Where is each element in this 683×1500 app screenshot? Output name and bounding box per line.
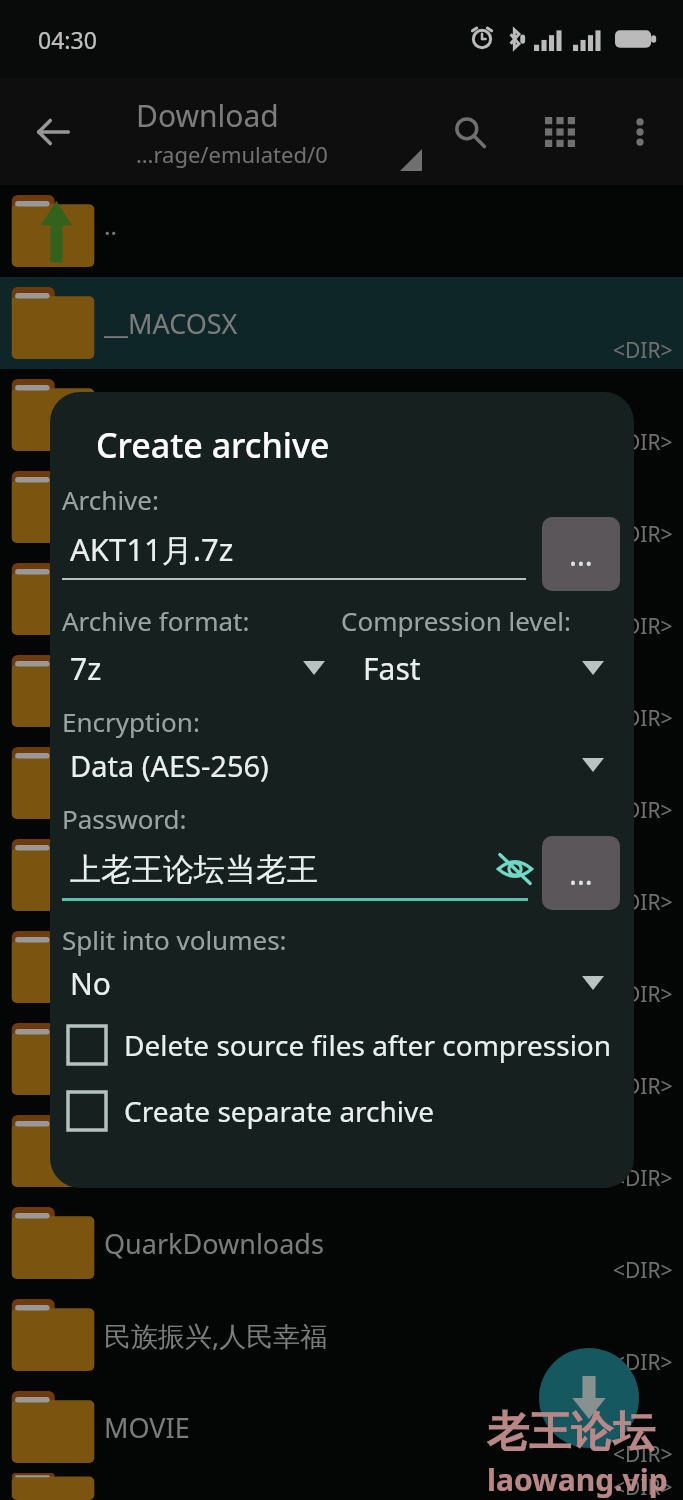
button[interactable]: Back (22, 101, 84, 163)
staticText: <DIR> (613, 612, 673, 641)
staticText: 上老王论坛当老王 (70, 850, 492, 889)
button[interactable]: <DIR> (0, 1013, 683, 1105)
button[interactable]: QuarkDownloads (0, 1197, 683, 1289)
button[interactable]: Show password (492, 846, 538, 892)
button[interactable]: .. (0, 185, 683, 277)
button[interactable]: Delete source files after compression (68, 1019, 620, 1071)
staticText: 老王论坛 (487, 1406, 655, 1459)
staticText: Password: (62, 801, 187, 836)
staticText: 7z (70, 648, 303, 689)
button[interactable]: Password options (542, 836, 620, 910)
staticText: Fast (363, 648, 582, 689)
button[interactable]: AKT11月.7z (62, 528, 538, 580)
staticText: …rage/emulated/0 (136, 139, 328, 169)
staticText: Create separate archive (124, 1092, 435, 1130)
button[interactable]: No (62, 957, 620, 1009)
staticText: AKT11月.7z (70, 528, 234, 570)
staticText: Encryption: (62, 704, 200, 739)
staticText: <DIR> (613, 888, 673, 917)
button[interactable]: <DIR> (0, 461, 683, 553)
staticText: Archive format: (62, 603, 341, 638)
staticText: 04:30 (38, 24, 97, 55)
staticText: Download (136, 95, 279, 136)
staticText: <DIR> (613, 704, 673, 733)
staticText: <DIR> (613, 980, 673, 1009)
button[interactable]: More options (611, 103, 669, 161)
button[interactable]: <DIR> (0, 645, 683, 737)
staticText: Create archive (96, 422, 330, 468)
staticText: <DIR> (613, 1348, 673, 1377)
staticText: <DIR> (613, 1164, 673, 1193)
staticText: Split into volumes: (62, 922, 287, 957)
staticText: 民族振兴,人民幸福 (104, 1317, 328, 1354)
staticText: Data (AES-256) (70, 746, 582, 785)
button[interactable]: <DIR> (0, 737, 683, 829)
staticText: <DIR> (613, 1072, 673, 1101)
staticText: <DIR> (613, 520, 673, 549)
staticText: <DIR> (613, 336, 673, 365)
button[interactable]: Fast (341, 642, 620, 694)
button[interactable]: Data (AES-256) (62, 739, 620, 791)
staticText: No (70, 963, 582, 1004)
staticText: Archive: (62, 482, 159, 517)
staticText: <DIR> (613, 1473, 673, 1496)
staticText: .. (104, 209, 117, 242)
button[interactable]: 民族振兴,人民幸福 (0, 1289, 683, 1381)
staticText: <DIR> (613, 428, 673, 457)
button[interactable]: 上老王论坛当老王 (62, 846, 538, 901)
staticText: <DIR> (613, 1440, 673, 1469)
staticText: __MACOSX (104, 305, 238, 342)
button[interactable]: 7z (62, 642, 341, 694)
staticText: Compression level: (341, 603, 620, 638)
staticText: <DIR> (613, 1256, 673, 1285)
button[interactable]: Create separate archive (68, 1085, 620, 1137)
staticText: MOVIE (104, 1409, 190, 1446)
button[interactable]: MOVIE (0, 1381, 683, 1473)
button[interactable]: <DIR> (0, 829, 683, 921)
staticText: <DIR> (613, 796, 673, 825)
button[interactable]: Grid view (529, 101, 591, 163)
button[interactable]: <DIR> (0, 1105, 683, 1197)
staticText: laowang.vip (487, 1459, 668, 1500)
button[interactable]: Download (539, 1348, 639, 1448)
button[interactable]: Browse archive path (542, 517, 620, 591)
button[interactable]: <DIR> (0, 553, 683, 645)
button[interactable]: Search (439, 101, 501, 163)
button[interactable]: <DIR> (0, 369, 683, 461)
button[interactable]: __MACOSX (0, 277, 683, 369)
button[interactable]: <DIR> (0, 921, 683, 1013)
staticText: Delete source files after compression (124, 1026, 612, 1064)
button[interactable]: <DIR> (0, 1473, 683, 1500)
staticText: … (569, 534, 593, 575)
staticText: QuarkDownloads (104, 1225, 324, 1262)
staticText: … (569, 853, 593, 894)
button[interactable]: Download (136, 95, 328, 169)
